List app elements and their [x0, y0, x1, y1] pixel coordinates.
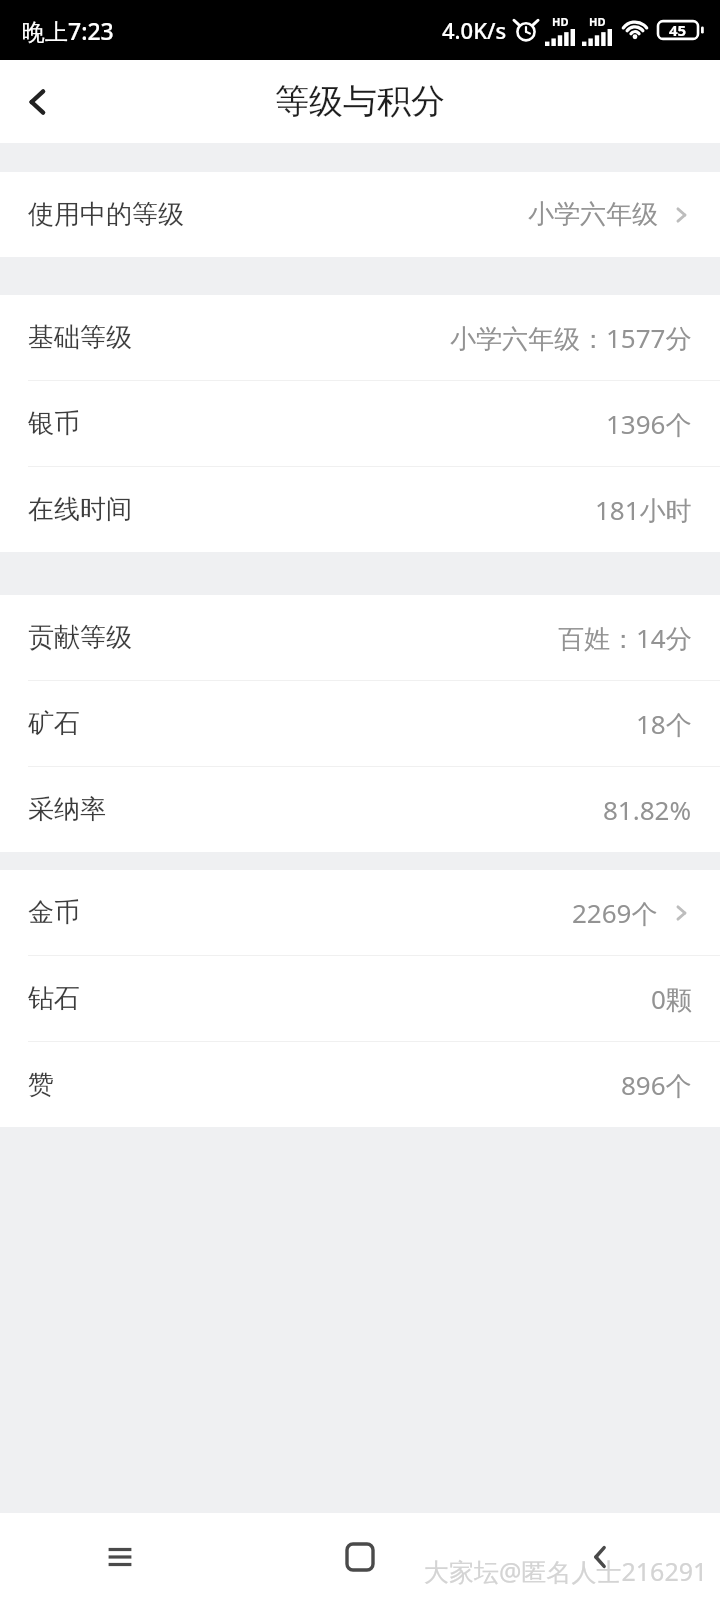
button[interactable]: Home: [328, 1525, 392, 1589]
staticText: 贡献等级: [28, 621, 132, 654]
button[interactable]: Back: [0, 64, 76, 140]
button[interactable]: 矿石: [0, 681, 720, 767]
staticText: 在线时间: [28, 493, 132, 526]
staticText: 81.82%: [603, 792, 692, 827]
staticText: 4.0K/s: [442, 15, 507, 45]
staticText: 晚上7:23: [22, 15, 114, 46]
staticText: 18个: [636, 706, 692, 742]
staticText: 基础等级: [28, 321, 132, 354]
staticText: 小学六年级：1577分: [450, 320, 692, 356]
button[interactable]: Back: [568, 1525, 632, 1589]
staticText: 181小时: [595, 492, 692, 528]
staticText: 赞: [28, 1068, 54, 1101]
staticText: 金币: [28, 896, 80, 929]
staticText: 使用中的等级: [28, 198, 184, 231]
staticText: 银币: [28, 407, 80, 440]
staticText: 小学六年级: [528, 198, 658, 231]
staticText: 矿石: [28, 707, 80, 740]
staticText: 等级与积分: [275, 80, 445, 123]
staticText: 采纳率: [28, 793, 106, 826]
staticText: 钻石: [28, 982, 80, 1015]
button[interactable]: 钻石: [0, 956, 720, 1042]
button[interactable]: 基础等级: [0, 295, 720, 381]
staticText: 大家坛@匿名人士216291: [424, 1554, 708, 1588]
button[interactable]: 在线时间: [0, 467, 720, 552]
staticText: HD: [589, 14, 606, 29]
button[interactable]: 金币: [0, 870, 720, 956]
button[interactable]: 银币: [0, 381, 720, 467]
button[interactable]: 采纳率: [0, 767, 720, 852]
button[interactable]: Recent apps: [88, 1525, 152, 1589]
staticText: 2269个: [572, 895, 658, 931]
staticText: HD: [552, 14, 569, 29]
staticText: 0颗: [651, 981, 692, 1017]
button[interactable]: 赞: [0, 1042, 720, 1127]
staticText: 45: [669, 20, 687, 40]
button[interactable]: 使用中的等级: [0, 172, 720, 257]
staticText: 百姓：14分: [558, 620, 692, 656]
staticText: 896个: [621, 1067, 692, 1103]
button[interactable]: 贡献等级: [0, 595, 720, 681]
staticText: 1396个: [606, 406, 692, 442]
